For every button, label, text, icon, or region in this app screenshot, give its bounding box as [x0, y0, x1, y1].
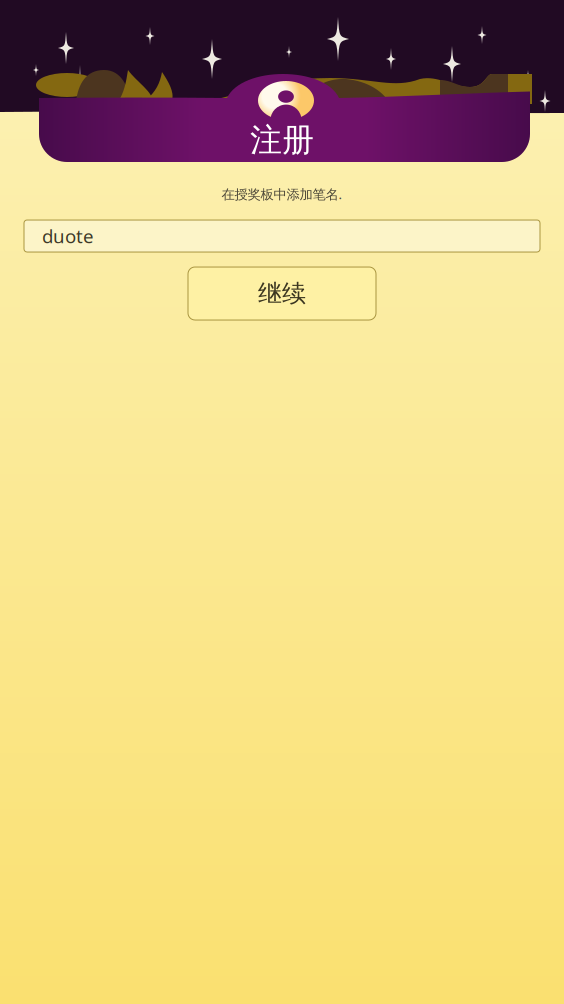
staticText: 注册 — [250, 120, 314, 160]
staticText: 在授奖板中添加笔名. — [221, 185, 342, 203]
button[interactable]: 继续 — [188, 267, 376, 320]
staticText: 继续 — [258, 279, 306, 308]
staticText: duote — [42, 224, 94, 248]
